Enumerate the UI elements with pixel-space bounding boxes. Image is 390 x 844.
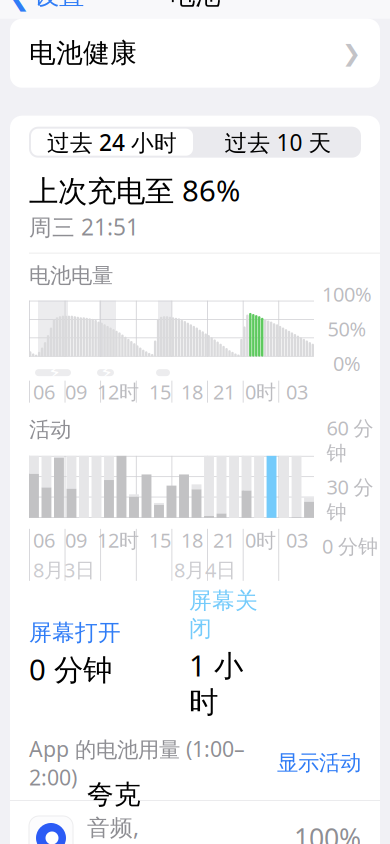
staticText: 上次充电至 86% xyxy=(29,171,240,210)
staticText: 过去 10 天 xyxy=(224,127,331,157)
staticText: 显示活动 xyxy=(277,750,361,776)
staticText: 设置 xyxy=(34,0,84,11)
button[interactable]: 过去 24 小时 xyxy=(29,127,195,158)
staticText: 1 小时 xyxy=(189,645,243,720)
staticText: 21 xyxy=(213,527,235,553)
staticText: App 的电池用量 (1:00–2:00) xyxy=(29,734,245,791)
staticText: ⚡︎ xyxy=(100,362,113,383)
button[interactable]: 过去 10 天 xyxy=(195,127,361,158)
staticText: 0 分钟 xyxy=(322,533,378,559)
staticText: 过去 24 小时 xyxy=(47,127,177,157)
button[interactable]: 夸克 xyxy=(10,801,380,844)
staticText: 03 xyxy=(286,378,308,405)
staticText: ❯ xyxy=(342,40,361,66)
staticText: 50% xyxy=(327,315,366,342)
staticText: 15 xyxy=(149,378,171,405)
staticText: ❮ xyxy=(8,0,30,11)
staticText: 8月4日 xyxy=(174,556,236,583)
staticText: 18 xyxy=(181,378,203,405)
staticText: 电池健康 xyxy=(29,37,137,70)
staticText: 8月3日 xyxy=(33,556,95,583)
staticText: 0时 xyxy=(245,527,276,553)
staticText: 0时 xyxy=(245,378,276,405)
staticText: 100% xyxy=(294,820,361,844)
staticText: 09 xyxy=(65,378,87,405)
button[interactable]: ❮ xyxy=(0,0,84,19)
staticText: 15 xyxy=(149,527,171,553)
staticText: 06 xyxy=(33,378,55,405)
staticText: 12时 xyxy=(97,527,139,553)
staticText: 夸克 xyxy=(87,778,141,811)
staticText: 音频, 后台活动 xyxy=(87,812,156,844)
staticText: 18 xyxy=(181,527,203,553)
staticText: 0% xyxy=(333,350,361,376)
staticText: 12时 xyxy=(97,378,139,405)
staticText: 09 xyxy=(65,527,87,553)
staticText: 电池电量 xyxy=(29,262,113,289)
staticText: 活动 xyxy=(29,417,71,443)
staticText: 电池 xyxy=(170,0,220,11)
staticText: 屏幕打开 xyxy=(29,619,121,647)
staticText: 屏幕关闭 xyxy=(189,587,258,642)
staticText: 周三 21:51 xyxy=(29,212,139,242)
staticText: ⚡︎ xyxy=(48,362,61,383)
staticText: 21 xyxy=(213,378,235,405)
staticText: 30 分钟 xyxy=(326,474,373,525)
button[interactable]: 显示活动 xyxy=(277,746,361,780)
staticText: 60 分钟 xyxy=(326,414,373,465)
staticText: 0 分钟 xyxy=(29,650,112,689)
button[interactable]: 电池健康 xyxy=(10,19,380,88)
staticText: 100% xyxy=(322,281,372,307)
staticText: 06 xyxy=(33,527,55,553)
staticText: 03 xyxy=(286,527,308,553)
